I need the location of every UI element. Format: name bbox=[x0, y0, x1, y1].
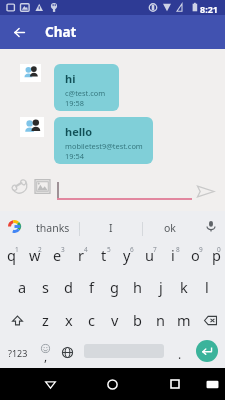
staticText: l bbox=[205, 277, 209, 297]
button[interactable]: Comma bbox=[35, 336, 56, 368]
button[interactable]: 2 bbox=[23, 240, 46, 272]
staticText: 19:58 bbox=[65, 98, 84, 108]
button[interactable]: f bbox=[80, 272, 103, 304]
button[interactable]: j bbox=[149, 272, 172, 304]
staticText: r bbox=[78, 245, 84, 265]
button[interactable]: 6 bbox=[115, 240, 138, 272]
button[interactable]: Period bbox=[169, 336, 190, 368]
staticText: h bbox=[133, 277, 142, 297]
staticText: k bbox=[180, 277, 188, 297]
staticText: c bbox=[88, 310, 95, 330]
staticText: ok bbox=[164, 221, 176, 235]
staticText: c@test.com bbox=[65, 88, 106, 98]
button[interactable]: b bbox=[126, 304, 149, 336]
button[interactable]: I bbox=[80, 211, 142, 240]
button[interactable]: Change language bbox=[56, 336, 78, 368]
staticText: 3 bbox=[61, 245, 65, 254]
button[interactable]: Recent apps bbox=[163, 372, 187, 396]
button[interactable]: h bbox=[126, 272, 149, 304]
button[interactable]: z bbox=[34, 304, 57, 336]
staticText: a bbox=[18, 277, 27, 297]
staticText: b bbox=[133, 310, 142, 330]
button[interactable]: Back bbox=[8, 15, 30, 49]
button[interactable]: ?123 bbox=[0, 336, 35, 368]
staticText: Chat bbox=[45, 23, 77, 41]
button[interactable]: Hide keyboard bbox=[200, 372, 224, 396]
staticText: . bbox=[178, 346, 182, 362]
button[interactable]: thanks bbox=[26, 211, 79, 240]
button[interactable]: s bbox=[34, 272, 57, 304]
staticText: o bbox=[191, 245, 200, 265]
staticText: 2 bbox=[38, 245, 42, 254]
staticText: 0 bbox=[217, 245, 221, 254]
staticText: z bbox=[42, 310, 49, 330]
button[interactable]: g bbox=[103, 272, 126, 304]
staticText: 5 bbox=[107, 245, 111, 254]
button[interactable]: 1 bbox=[0, 240, 23, 272]
staticText: 6 bbox=[130, 245, 134, 254]
staticText: f bbox=[89, 277, 94, 297]
button[interactable]: hi bbox=[54, 64, 119, 111]
button[interactable]: l bbox=[195, 272, 218, 304]
staticText: p bbox=[212, 245, 221, 265]
staticText: , bbox=[44, 348, 48, 364]
staticText: thanks bbox=[36, 221, 70, 235]
button[interactable]: Call bbox=[8, 175, 33, 200]
staticText: 19:54 bbox=[65, 151, 84, 161]
staticText: q bbox=[7, 245, 16, 265]
button[interactable]: Backspace bbox=[195, 304, 225, 336]
button[interactable]: Home bbox=[100, 372, 124, 396]
staticText: i bbox=[171, 245, 175, 265]
button[interactable]: Voice input bbox=[199, 211, 223, 240]
staticText: t bbox=[101, 245, 107, 265]
staticText: 7 bbox=[153, 245, 157, 254]
staticText: mobiletest9@test.com bbox=[65, 141, 143, 151]
button[interactable]: d bbox=[57, 272, 80, 304]
staticText: ?123 bbox=[8, 347, 28, 359]
button[interactable]: Enter bbox=[196, 340, 218, 362]
staticText: w bbox=[29, 245, 41, 265]
staticText: j bbox=[159, 277, 163, 297]
staticText: e bbox=[53, 245, 62, 265]
button[interactable]: a bbox=[11, 272, 34, 304]
staticText: x bbox=[65, 310, 73, 330]
button[interactable]: 7 bbox=[138, 240, 161, 272]
button[interactable]: v bbox=[103, 304, 126, 336]
staticText: 8 bbox=[176, 245, 180, 254]
button[interactable]: 8 bbox=[161, 240, 184, 272]
button[interactable]: ok bbox=[143, 211, 197, 240]
button[interactable]: m bbox=[172, 304, 195, 336]
button[interactable]: n bbox=[149, 304, 172, 336]
button[interactable]: c bbox=[80, 304, 103, 336]
staticText: I bbox=[109, 221, 113, 235]
staticText: y bbox=[123, 245, 131, 265]
button[interactable]: Shift bbox=[0, 304, 34, 336]
staticText: 9 bbox=[199, 245, 203, 254]
staticText: v bbox=[111, 310, 119, 330]
staticText: u bbox=[145, 245, 154, 265]
staticText: 1 bbox=[15, 245, 19, 254]
button[interactable]: k bbox=[172, 272, 195, 304]
staticText: m bbox=[177, 310, 191, 330]
button[interactable]: Attach image bbox=[32, 176, 53, 197]
staticText: n bbox=[156, 310, 165, 330]
staticText: hi bbox=[65, 71, 76, 86]
staticText: 8:21 bbox=[200, 3, 218, 15]
button[interactable]: 0 bbox=[207, 240, 225, 272]
staticText: hello bbox=[65, 124, 93, 139]
staticText: d bbox=[64, 277, 73, 297]
button[interactable]: 3 bbox=[46, 240, 69, 272]
button[interactable]: Back bbox=[38, 372, 62, 396]
staticText: s bbox=[42, 277, 49, 297]
staticText: g bbox=[110, 277, 119, 297]
staticText: 4 bbox=[84, 245, 88, 254]
button[interactable]: Send bbox=[193, 179, 217, 203]
button[interactable]: x bbox=[57, 304, 80, 336]
button[interactable]: hello bbox=[54, 117, 153, 164]
button[interactable]: 9 bbox=[184, 240, 207, 272]
button[interactable]: 5 bbox=[92, 240, 115, 272]
button[interactable]: 4 bbox=[69, 240, 92, 272]
